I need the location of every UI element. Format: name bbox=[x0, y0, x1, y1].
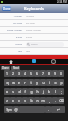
staticText: z bbox=[6, 98, 8, 103]
button[interactable]: ZIP Code bbox=[0, 20, 68, 27]
staticText: 8 bbox=[48, 71, 50, 76]
button[interactable]: k bbox=[46, 88, 52, 95]
button[interactable]: Search bbox=[0, 41, 68, 48]
button[interactable]: 5 bbox=[28, 70, 34, 77]
button[interactable]: a bbox=[4, 88, 10, 95]
button[interactable]: Phone Number bbox=[0, 27, 68, 34]
staticText: Search bbox=[31, 43, 38, 46]
button[interactable]: b bbox=[28, 97, 34, 104]
staticText: g bbox=[30, 89, 33, 94]
staticText: s bbox=[12, 89, 14, 94]
button[interactable]: . bbox=[45, 106, 51, 113]
staticText: i bbox=[49, 80, 50, 85]
button[interactable]: p bbox=[58, 79, 64, 86]
staticText: v bbox=[24, 98, 26, 103]
staticText: b bbox=[30, 98, 33, 103]
other: Home bbox=[9, 60, 13, 64]
staticText: E-mail bbox=[26, 36, 33, 39]
button[interactable]: e bbox=[16, 79, 22, 86]
button[interactable]: 9 bbox=[52, 70, 58, 77]
staticText: l bbox=[55, 89, 56, 94]
button[interactable]: v bbox=[22, 97, 28, 104]
staticText: y bbox=[36, 80, 38, 85]
staticText: Phone Number bbox=[6, 29, 22, 32]
staticText: ↵ bbox=[57, 108, 60, 112]
button[interactable]: m bbox=[40, 97, 46, 104]
button[interactable]: . bbox=[52, 97, 58, 104]
staticText: . bbox=[48, 107, 49, 112]
staticText: o bbox=[54, 80, 57, 85]
staticText: q bbox=[6, 80, 9, 85]
staticText: d bbox=[18, 89, 21, 94]
button[interactable]: Text bbox=[0, 48, 68, 55]
staticText: t bbox=[30, 80, 32, 85]
button[interactable]: q bbox=[4, 79, 10, 86]
staticText: 5 bbox=[30, 71, 32, 76]
staticText: ; bbox=[61, 89, 62, 94]
button[interactable]: 2 bbox=[10, 70, 16, 77]
button[interactable]: 1 bbox=[4, 70, 10, 77]
staticText: , bbox=[49, 98, 50, 103]
button[interactable]: n bbox=[34, 97, 40, 104]
button[interactable]: j bbox=[40, 88, 46, 95]
button[interactable]: w bbox=[10, 79, 16, 86]
button[interactable]: Sym bbox=[4, 106, 13, 113]
staticText: Number bbox=[26, 15, 35, 18]
button[interactable]: 6 bbox=[34, 70, 40, 77]
staticText: Search bbox=[15, 43, 22, 46]
staticText: j bbox=[43, 89, 44, 94]
staticText: p bbox=[60, 80, 63, 85]
staticText: f bbox=[24, 89, 26, 94]
button[interactable]: f bbox=[22, 88, 28, 95]
button[interactable]: , bbox=[46, 97, 52, 104]
button[interactable]: x bbox=[10, 97, 16, 104]
button[interactable]: u bbox=[40, 79, 46, 86]
button[interactable]: t bbox=[28, 79, 34, 86]
button[interactable]: d bbox=[16, 88, 22, 95]
button[interactable]: 3 bbox=[16, 70, 22, 77]
button[interactable]: l bbox=[52, 88, 58, 95]
button[interactable]: E-mail bbox=[0, 34, 68, 41]
staticText: w bbox=[12, 80, 15, 85]
button[interactable]: o bbox=[52, 79, 58, 86]
button[interactable]: 0 bbox=[58, 70, 64, 77]
button[interactable]: Done bbox=[2, 6, 11, 11]
staticText: n bbox=[36, 98, 39, 103]
button[interactable]: ↵ bbox=[51, 106, 65, 113]
staticText: 1 bbox=[6, 71, 8, 76]
staticText: u bbox=[42, 80, 45, 85]
button[interactable]: 7 bbox=[40, 70, 46, 77]
button[interactable]: 8 bbox=[46, 70, 52, 77]
button[interactable]: g bbox=[28, 88, 34, 95]
staticText: Next bbox=[13, 66, 19, 70]
staticText: 7 bbox=[42, 71, 44, 76]
button[interactable]: h bbox=[34, 88, 40, 95]
staticText: 4 bbox=[24, 71, 26, 76]
staticText: 9 bbox=[54, 71, 56, 76]
button[interactable]: 4 bbox=[22, 70, 28, 77]
button[interactable]: ⌫ bbox=[58, 97, 64, 104]
staticText: Text bbox=[26, 50, 31, 53]
button[interactable]: @ bbox=[13, 106, 19, 113]
button[interactable]: Number bbox=[0, 13, 68, 20]
button[interactable]: y bbox=[34, 79, 40, 86]
staticText: 3 bbox=[18, 71, 20, 76]
button[interactable]: Next bbox=[11, 66, 20, 70]
staticText: r bbox=[24, 80, 26, 85]
staticText: Done bbox=[2, 66, 9, 70]
staticText: h bbox=[36, 89, 39, 94]
other: Settings bbox=[51, 59, 56, 64]
button[interactable]: z bbox=[4, 97, 10, 104]
other: Keyboard bbox=[32, 59, 36, 63]
button[interactable]: ; bbox=[58, 88, 64, 95]
staticText: E-mail bbox=[15, 36, 22, 39]
button[interactable]: Done bbox=[1, 66, 10, 70]
button[interactable]: s bbox=[10, 88, 16, 95]
button[interactable]: i bbox=[46, 79, 52, 86]
button[interactable]: c bbox=[16, 97, 22, 104]
staticText: a bbox=[6, 89, 8, 94]
button[interactable]: r bbox=[22, 79, 28, 86]
staticText: Number bbox=[13, 15, 22, 18]
staticText: 2:34 PM bbox=[57, 0, 67, 4]
